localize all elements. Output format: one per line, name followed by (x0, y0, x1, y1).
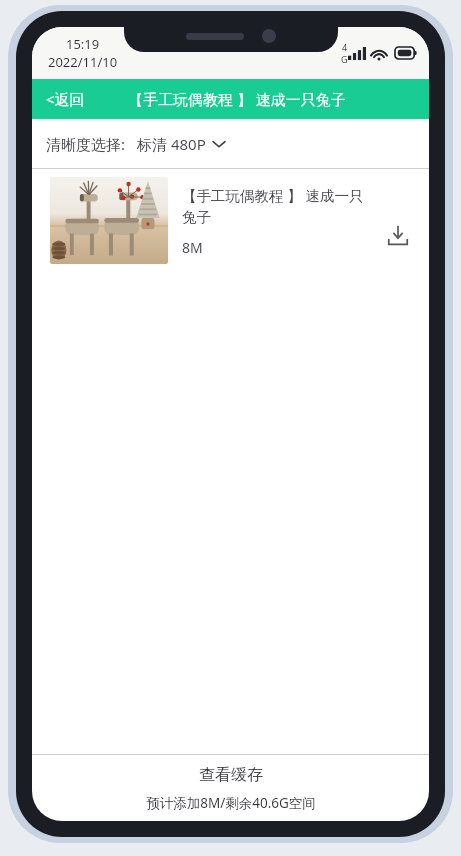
staticText: 8M (182, 238, 203, 257)
staticText: 【手工玩偶教程 】 速成一只兔子 (128, 89, 346, 109)
staticText: <返回 (46, 89, 85, 109)
button[interactable]: Download (379, 217, 417, 255)
button[interactable]: 【手工玩偶教程 】 速成一只兔子 (32, 169, 429, 272)
staticText: 预计添加8M/剩余40.6G空间 (146, 794, 316, 812)
staticText: G (341, 53, 348, 65)
button[interactable]: 清晰度选择: (32, 119, 429, 168)
staticText: 标清 480P (137, 134, 206, 154)
button[interactable]: 查看缓存 (32, 755, 429, 821)
staticText: 清晰度选择: (46, 134, 126, 154)
staticText: 查看缓存 (199, 765, 263, 785)
button[interactable]: <返回 (32, 83, 93, 115)
staticText: 2022/11/10 (48, 53, 118, 71)
staticText: 15:19 (66, 35, 100, 53)
staticText: 4 (342, 41, 348, 53)
staticText: 【手工玩偶教程 】 速成一只兔子 (182, 185, 373, 227)
